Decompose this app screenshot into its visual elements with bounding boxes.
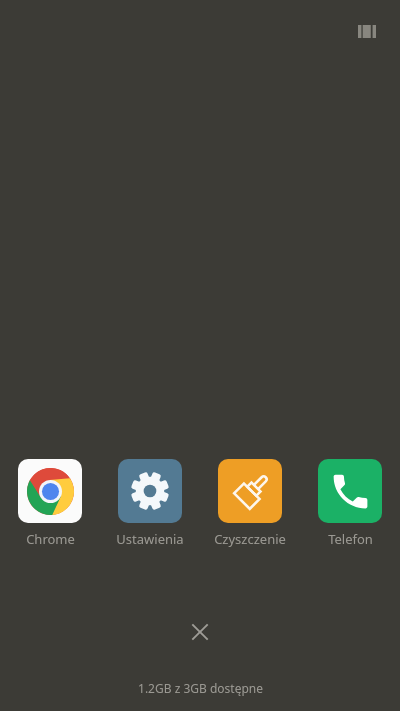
staticText: 1.2GB z 3GB dostępne [138, 680, 263, 696]
button[interactable]: Close all apps [180, 612, 220, 652]
button[interactable]: Telefon [300, 459, 400, 548]
staticText: Chrome [26, 530, 75, 548]
button[interactable]: Ustawienia [100, 459, 200, 548]
staticText: Ustawienia [116, 530, 184, 548]
button[interactable]: Chrome [0, 459, 100, 548]
staticText: Telefon [328, 530, 373, 548]
staticText: Czyszczenie [214, 530, 286, 548]
button[interactable]: Switch recents layout [348, 13, 385, 50]
button[interactable]: Czyszczenie [200, 459, 300, 548]
